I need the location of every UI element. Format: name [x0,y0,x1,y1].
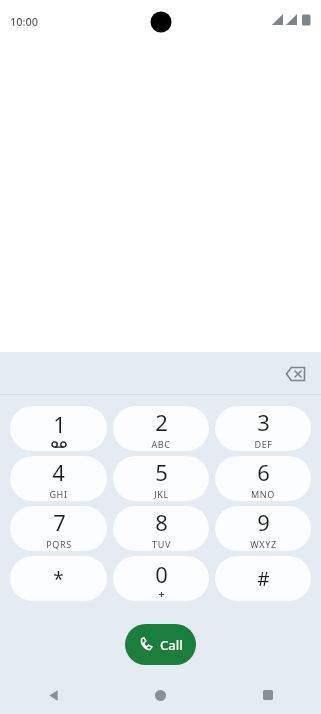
staticText: 7 [53,507,66,537]
button[interactable]: 1 [10,406,107,451]
button[interactable]: Call [125,624,196,665]
button[interactable]: * [10,556,107,601]
staticText: * [53,566,64,592]
button[interactable]: 2 [113,406,209,451]
staticText: 0 [155,559,168,589]
staticText: 5 [155,457,168,487]
button[interactable]: 4 [10,456,107,501]
button[interactable]: 7 [10,506,107,551]
button[interactable]: Backspace [277,356,313,392]
staticText: WXYZ [250,538,277,550]
button[interactable]: 8 [113,506,209,551]
button[interactable]: 5 [113,456,209,501]
staticText: TUV [152,538,171,550]
staticText: MNO [251,488,275,500]
staticText: 6 [257,457,270,487]
staticText: ABC [151,438,171,450]
button[interactable]: # [215,556,311,601]
staticText: 1 [53,409,66,439]
staticText: GHI [49,488,68,500]
staticText: 2 [155,407,168,437]
button[interactable]: Home [107,678,214,712]
button[interactable]: 9 [215,506,311,551]
button[interactable]: 6 [215,456,311,501]
staticText: 10:00 [10,14,39,29]
button[interactable]: 3 [215,406,311,451]
button[interactable]: Recent apps [214,678,321,712]
staticText: 3 [257,407,270,437]
staticText: DEF [254,438,273,450]
staticText: Call [160,636,183,654]
button[interactable]: Back [0,678,107,712]
button[interactable]: 0 [113,556,209,601]
staticText: JKL [154,488,169,500]
staticText: 8 [155,507,168,537]
staticText: PQRS [46,538,72,550]
staticText: 9 [257,507,270,537]
staticText: # [257,566,270,592]
staticText: 4 [52,457,65,487]
